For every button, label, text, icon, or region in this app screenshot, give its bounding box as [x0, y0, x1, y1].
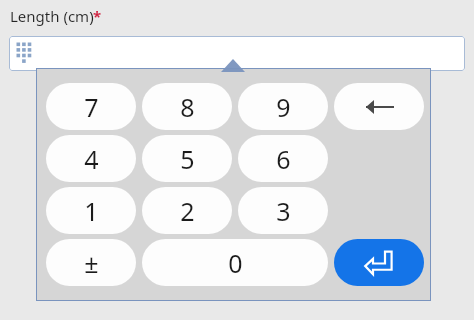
staticText: 6 [276, 142, 291, 176]
button[interactable]: 0 [142, 239, 328, 286]
button[interactable]: Open number pad [16, 41, 34, 63]
staticText: 1 [84, 194, 99, 228]
staticText: ± [84, 246, 99, 280]
button[interactable]: 5 [142, 135, 232, 182]
staticText: 0 [228, 246, 243, 280]
button[interactable]: 2 [142, 187, 232, 234]
button[interactable]: 1 [46, 187, 136, 234]
button[interactable]: 6 [238, 135, 328, 182]
button[interactable]: 4 [46, 135, 136, 182]
staticText: 8 [180, 90, 195, 124]
button[interactable]: 9 [238, 83, 328, 130]
staticText: Length (cm) [10, 6, 94, 26]
button[interactable]: Backspace [334, 83, 424, 130]
button[interactable]: ± [46, 239, 136, 286]
button[interactable]: 7 [46, 83, 136, 130]
staticText: 5 [180, 142, 195, 176]
staticText: 3 [276, 194, 291, 228]
staticText: 7 [84, 90, 99, 124]
staticText: 2 [180, 194, 195, 228]
staticText: * [93, 6, 102, 26]
button[interactable]: 3 [238, 187, 328, 234]
button[interactable] [9, 36, 465, 71]
button[interactable]: Enter [334, 239, 424, 286]
staticText: 9 [276, 90, 291, 124]
button[interactable]: 8 [142, 83, 232, 130]
staticText: 4 [84, 142, 99, 176]
